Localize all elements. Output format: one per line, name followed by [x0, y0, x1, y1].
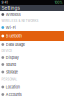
- staticText: 100%: [55, 1, 63, 4]
- staticText: Display: [6, 55, 19, 60]
- staticText: Bluetooth: [6, 34, 22, 38]
- staticText: Accounts: [6, 92, 22, 97]
- staticText: Sound: [6, 62, 16, 67]
- staticText: Data usage: [6, 42, 25, 47]
- staticText: DEVICE: [1, 49, 12, 53]
- button[interactable]: Location: [0, 83, 64, 91]
- staticText: Storage: [6, 70, 18, 74]
- button[interactable]: Wireless: [0, 11, 64, 18]
- staticText: Wi-Fi: [6, 25, 16, 30]
- staticText: Location: [6, 85, 20, 89]
- button[interactable]: Storage: [0, 68, 64, 76]
- button[interactable]: Wi-Fi: [0, 24, 64, 31]
- button[interactable]: Sound: [0, 61, 64, 68]
- staticText: Wireless: [6, 12, 21, 17]
- button[interactable]: Accounts: [0, 91, 64, 98]
- staticText: WIRELESS & NETWORKS: [1, 19, 38, 23]
- button[interactable]: Data usage: [0, 41, 64, 48]
- staticText: 9:41: [1, 1, 7, 4]
- staticText: Settings: [1, 5, 20, 11]
- button[interactable]: Bluetooth: [0, 31, 64, 41]
- button[interactable]: Display: [0, 54, 64, 61]
- staticText: PERSONAL: [1, 78, 17, 81]
